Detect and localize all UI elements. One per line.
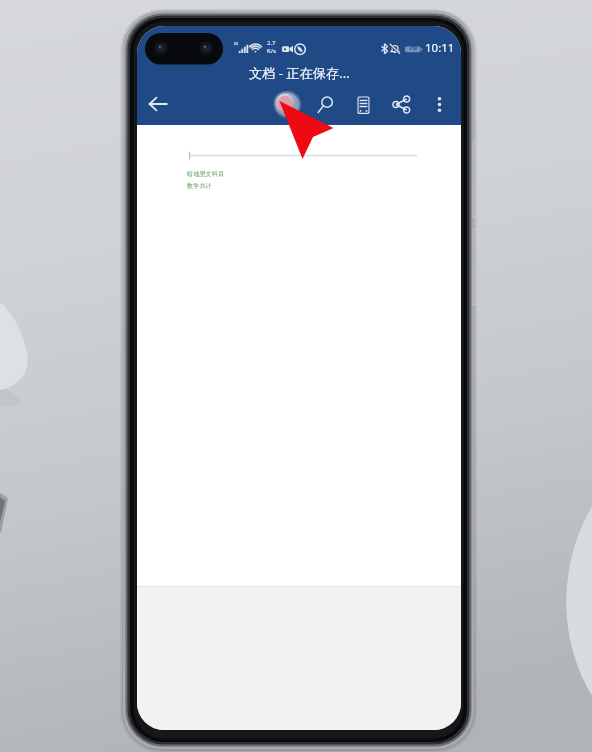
button[interactable]: More options	[420, 87, 458, 121]
staticText: 暗地里文科目	[187, 170, 225, 178]
staticText: 2.7	[267, 39, 276, 47]
staticText: 76	[409, 43, 418, 53]
button[interactable]: Share	[382, 87, 420, 121]
button[interactable]: Search	[306, 87, 344, 121]
staticText: 文档 - 正在保存...	[249, 64, 350, 82]
staticText: K/s	[267, 47, 276, 55]
staticText: 数学共计	[187, 182, 212, 190]
staticText: 10:11	[425, 40, 455, 56]
button[interactable]: Outline	[344, 87, 382, 121]
button[interactable]: Undo	[268, 87, 306, 121]
button[interactable]: Back	[137, 87, 179, 121]
